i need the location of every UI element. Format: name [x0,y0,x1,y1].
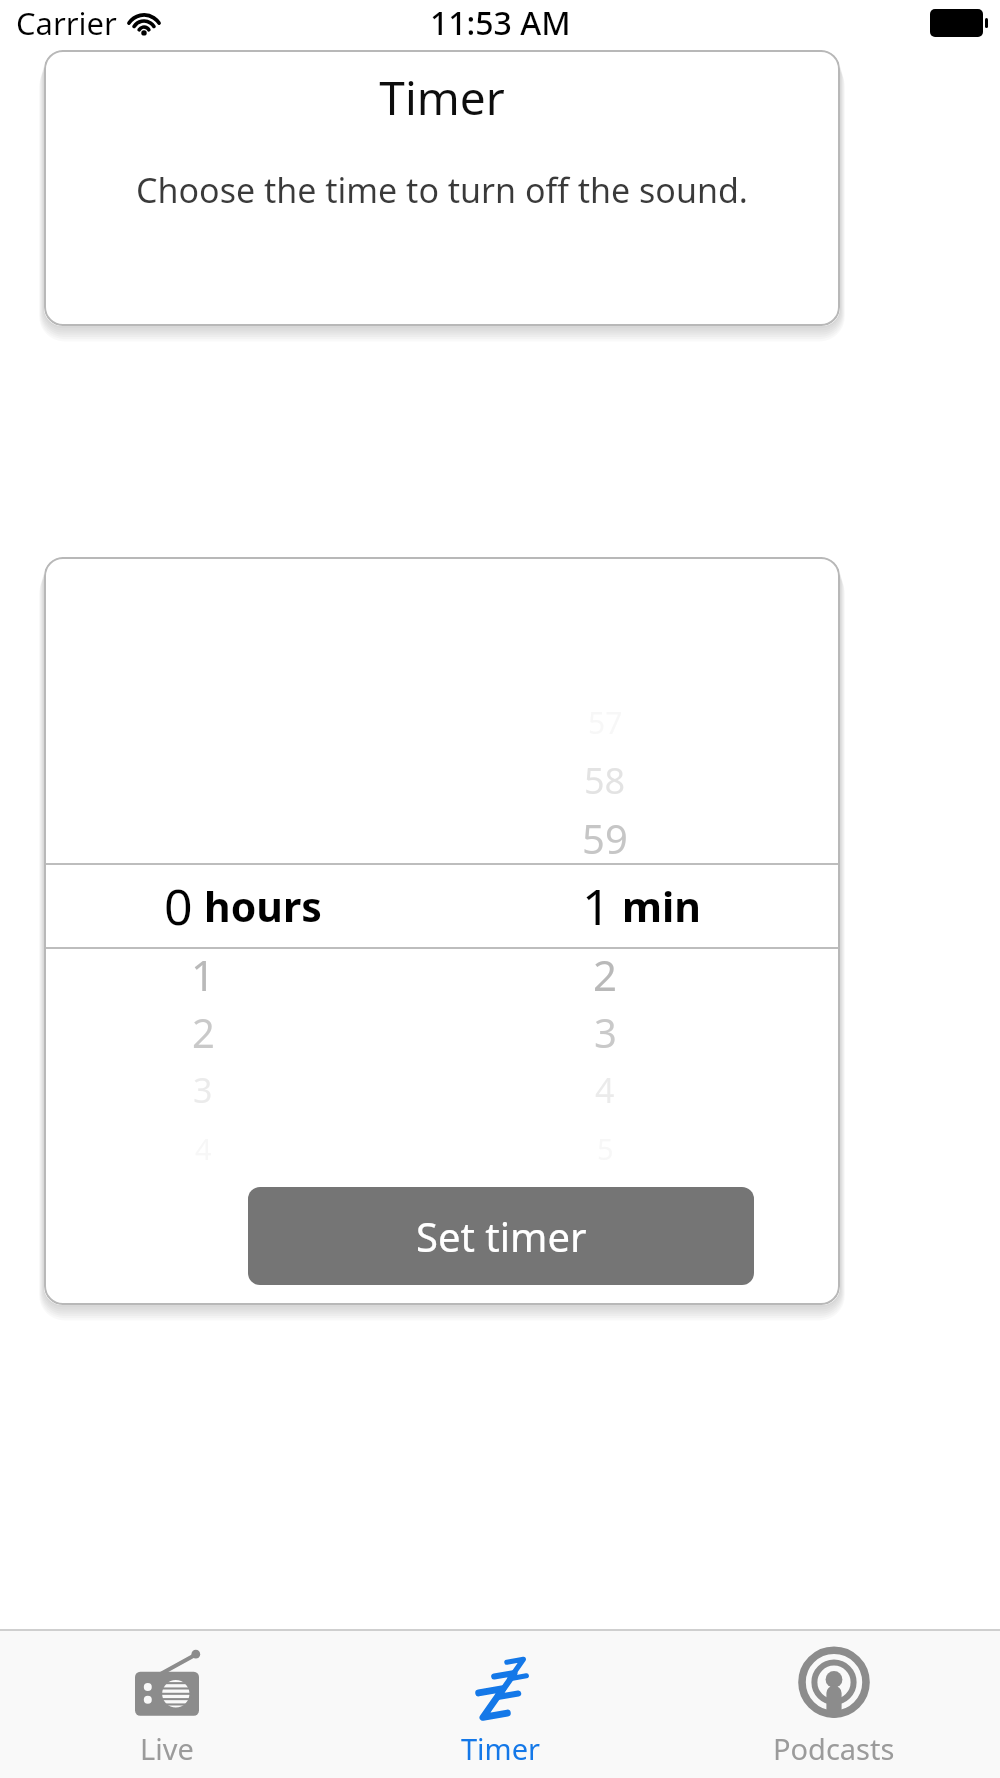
staticText: 58 [584,756,626,805]
staticText: Live [140,1729,194,1768]
staticText: 1 [191,946,216,1003]
staticText: 3 [594,1005,617,1059]
staticText: 2 [192,1005,215,1059]
button[interactable]: Minutes [442,557,840,1255]
staticText: 11:53 AM [430,1,571,45]
staticText: hours [204,878,322,934]
staticText: min [622,878,701,934]
staticText: 59 [582,811,628,865]
staticText: 0 [164,872,193,940]
button[interactable]: Timer [334,1631,667,1778]
button[interactable]: Hours [44,557,442,1255]
staticText: 1 [582,872,611,940]
staticText: Timer [461,1729,541,1768]
staticText: 2 [593,946,618,1003]
staticText: Set timer [416,1209,587,1263]
staticText: Podcasts [773,1729,895,1768]
button[interactable]: Set timer [248,1187,754,1285]
staticText: Carrier [16,2,117,44]
staticText: 4 [595,1067,615,1113]
button[interactable]: Live [0,1631,334,1778]
button[interactable]: Podcasts [667,1631,1000,1778]
staticText: Timer [379,66,505,129]
staticText: 3 [193,1067,213,1113]
staticText: Choose the time to turn off the sound. [136,167,748,213]
